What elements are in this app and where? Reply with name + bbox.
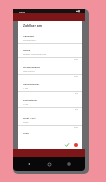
staticText: Stadt / Ort — [23, 116, 36, 119]
staticText: Strukturiert — [23, 39, 36, 42]
staticText: 0/30 — [74, 126, 78, 129]
button[interactable]: Back — [25, 160, 33, 168]
button[interactable]: Cancel — [73, 142, 79, 148]
button[interactable]: Hausnummer — [18, 80, 82, 96]
staticText: 0/5 — [75, 92, 78, 95]
staticText: Wien — [23, 121, 29, 124]
staticText: Max-Kunst — [23, 70, 35, 73]
staticText: Postleitzahl — [23, 98, 37, 101]
button[interactable]: Name — [18, 46, 82, 63]
staticText: ▴▴▮ — [76, 10, 80, 13]
staticText: 0/5 — [75, 108, 78, 111]
button[interactable]: Strassenname — [18, 63, 82, 80]
staticText: Land — [23, 131, 29, 134]
staticText: Strassenname — [23, 65, 40, 68]
staticText: 1187 — [23, 103, 29, 106]
button[interactable]: Stadt / Ort — [18, 114, 82, 129]
staticText: 1 bis — [23, 87, 29, 90]
staticText: 10:11 — [19, 10, 26, 13]
button[interactable]: Recents — [65, 160, 73, 168]
button[interactable]: Postleitzahl — [18, 96, 82, 114]
staticText: Ruben Automatik van — [23, 53, 47, 56]
button[interactable]: Save — [64, 142, 70, 148]
staticText: Zahlbar am — [23, 23, 43, 28]
button[interactable]: Abholzeit — [18, 32, 82, 46]
staticText: Hausnummer — [23, 82, 40, 85]
staticText: Abholzeit — [23, 34, 35, 37]
staticText: Name — [23, 48, 31, 51]
staticText: 0/30 — [74, 58, 78, 61]
staticText: 0/30 — [74, 75, 78, 78]
button[interactable]: Home — [45, 160, 53, 168]
